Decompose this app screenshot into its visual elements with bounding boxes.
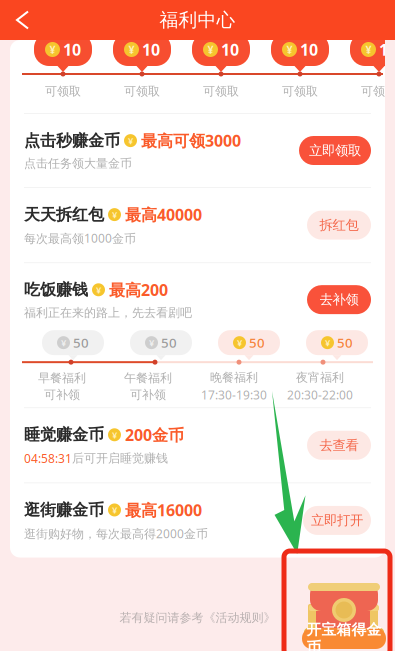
staticText: 可补领 [130,387,166,402]
staticText: 17:30-19:30 [201,387,267,403]
staticText: 睡觉赚金币 [24,425,104,445]
staticText: ¥ [149,336,154,349]
staticText: 10 [142,39,160,60]
staticText: 可领取 [124,84,160,99]
staticText: ¥ [286,42,292,57]
staticText: ¥ [237,336,242,349]
staticText: 最高40000 [125,204,202,225]
staticText: 拆红包 [319,217,358,233]
staticText: 最高可领3000 [141,130,241,151]
staticText: 10 [221,39,239,60]
staticText: ¥ [49,42,55,57]
staticText: 10 [63,39,81,60]
staticText: ¥ [96,284,101,296]
staticText: 50 [161,334,177,351]
staticText: ¥ [325,336,330,349]
staticText: ¥ [112,504,117,516]
staticText: 04:58:31 [24,450,72,466]
staticText: 可领取 [361,84,395,99]
staticText: 可领取 [45,84,81,99]
button[interactable]: 立即领取 [299,136,371,165]
staticText: 逛街赚金币 [24,500,104,520]
staticText: 立即打开 [311,512,363,529]
staticText: 逛街购好物，每次最高得2000金币 [24,526,208,541]
staticText: ¥ [207,42,213,57]
staticText: 10 [379,39,395,60]
staticText: 去查看 [319,437,358,453]
staticText: 20:30-22:00 [287,387,353,403]
staticText: 立即领取 [309,142,361,159]
staticText: 若有疑问请参考《活动规则》 [119,610,275,625]
staticText: 福利中心 [159,8,235,31]
staticText: 可领取 [282,84,318,99]
staticText: 夜宵福利 [296,370,344,385]
staticText: 吃饭赚钱 [24,280,88,300]
staticText: ¥ [112,208,117,221]
staticText: 午餐福利 [124,371,172,385]
staticText: 福利正在来的路上，先去看剧吧 [24,305,192,320]
staticText: 200金币 [125,424,184,445]
staticText: 最高16000 [125,499,202,520]
staticText: 可补领 [44,387,80,402]
staticText: ¥ [365,42,371,57]
staticText: 每次最高领1000金币 [24,230,136,246]
staticText: 去补领 [319,291,358,308]
button[interactable]: 立即打开 [303,506,371,535]
staticText: 开宝箱得金币 [306,620,381,651]
staticText: 50 [249,334,265,351]
staticText: 点击任务领大量金币 [24,156,132,171]
staticText: ¥ [61,336,66,349]
staticText: 早餐福利 [38,371,86,385]
staticText: 点击秒赚金币 [24,131,120,150]
button[interactable]: Back [0,1,42,38]
button[interactable]: 拆红包 [307,211,371,240]
staticText: 可领取 [203,84,239,99]
staticText: ¥ [128,42,134,57]
button[interactable]: 去补领 [307,285,371,314]
staticText: 50 [337,334,353,351]
staticText: 10 [300,39,318,60]
staticText: ¥ [112,429,117,441]
staticText: 50 [73,334,89,351]
staticText: ¥ [128,134,133,147]
staticText: 晚餐福利 [210,370,258,385]
staticText: 天天拆红包 [24,205,104,224]
button[interactable]: 去查看 [307,431,371,460]
staticText: 最高200 [109,279,168,300]
staticText: 后可开启睡觉赚钱 [72,451,168,466]
